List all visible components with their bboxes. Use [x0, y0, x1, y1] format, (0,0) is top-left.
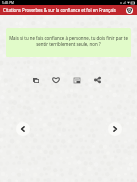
button[interactable]: Save as image	[71, 74, 83, 86]
button[interactable]: Previous quote	[16, 122, 30, 136]
staticText: 5:45 PM	[2, 1, 14, 5]
button[interactable]: Mais si tu ne fais confiance à personne,…	[6, 28, 131, 57]
button[interactable]: Favorite	[50, 74, 62, 86]
button[interactable]: App logo	[125, 6, 134, 15]
staticText: Citations Proverbes & sur la confiance e…	[3, 7, 124, 13]
button[interactable]: Share	[91, 74, 103, 86]
button[interactable]: Copy	[30, 74, 42, 86]
staticText: Mais si tu ne fais confiance à personne,…	[9, 35, 128, 47]
button[interactable]: Next quote	[108, 122, 122, 136]
